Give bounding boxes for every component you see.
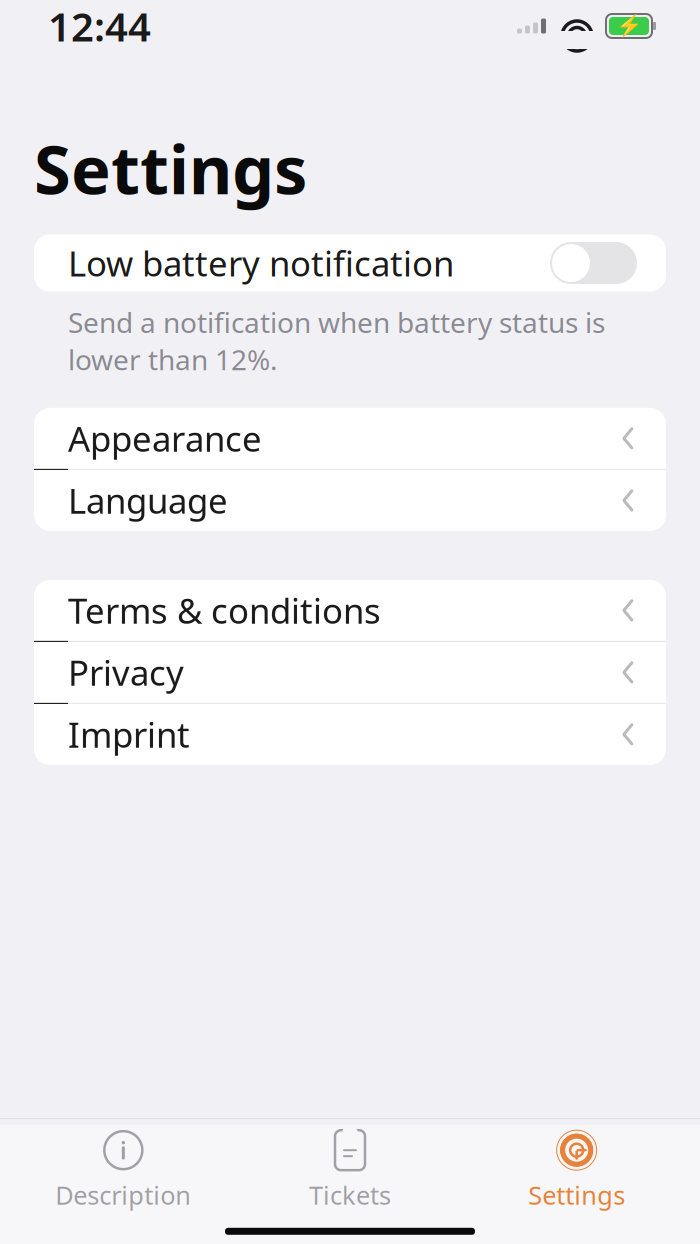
staticText: Terms & conditions [68,587,381,633]
button[interactable]: Low battery notification toggle [550,242,637,284]
button[interactable]: Privacy [34,642,666,703]
staticText: Appearance [68,415,262,461]
staticText: Imprint [68,711,190,757]
button[interactable]: Appearance [34,408,666,469]
staticText: Low battery notification [68,240,454,286]
staticText: ⚡ [615,14,642,38]
button[interactable]: Tickets [237,1119,463,1220]
staticText: 12:44 [48,0,151,52]
staticText: Description [55,1178,191,1212]
button[interactable]: Imprint [34,704,666,765]
staticText: Settings [528,1178,625,1212]
staticText: Send a notification when battery status … [68,303,605,378]
button[interactable]: Settings [463,1119,690,1220]
staticText: Tickets [309,1178,391,1212]
staticText: Privacy [68,649,184,695]
button[interactable]: Language [34,470,666,531]
button[interactable]: Terms & conditions [34,580,666,641]
staticText: Language [68,477,228,523]
button[interactable]: Description [10,1119,237,1220]
staticText: Settings [34,124,307,212]
